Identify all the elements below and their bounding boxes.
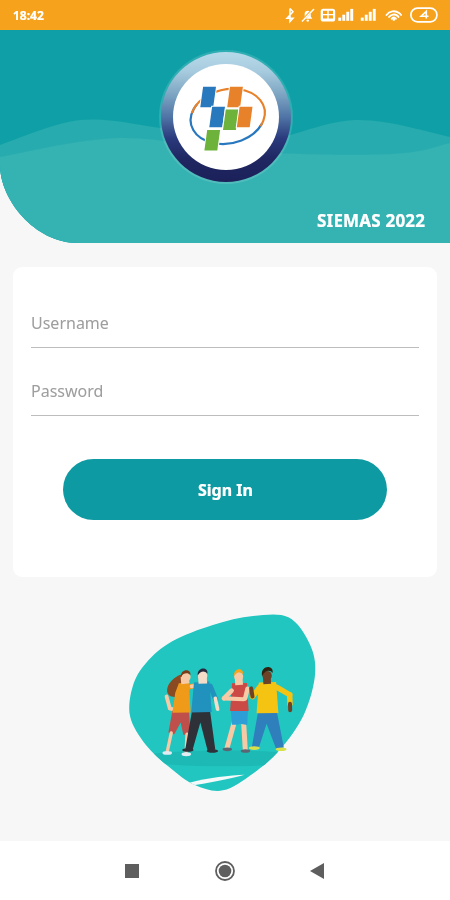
staticText: Sign In	[198, 479, 253, 501]
staticText: Password	[31, 380, 104, 402]
button[interactable]: Username	[31, 312, 419, 348]
staticText: Username	[31, 312, 109, 334]
button[interactable]: Home	[201, 847, 249, 895]
button[interactable]: Sign In	[63, 459, 387, 520]
button[interactable]: Back	[293, 847, 341, 895]
staticText: 18:42	[13, 7, 44, 23]
button[interactable]: Password	[31, 380, 419, 416]
button[interactable]: Recent apps	[108, 847, 156, 895]
staticText: SIEMAS 2022	[317, 209, 426, 232]
